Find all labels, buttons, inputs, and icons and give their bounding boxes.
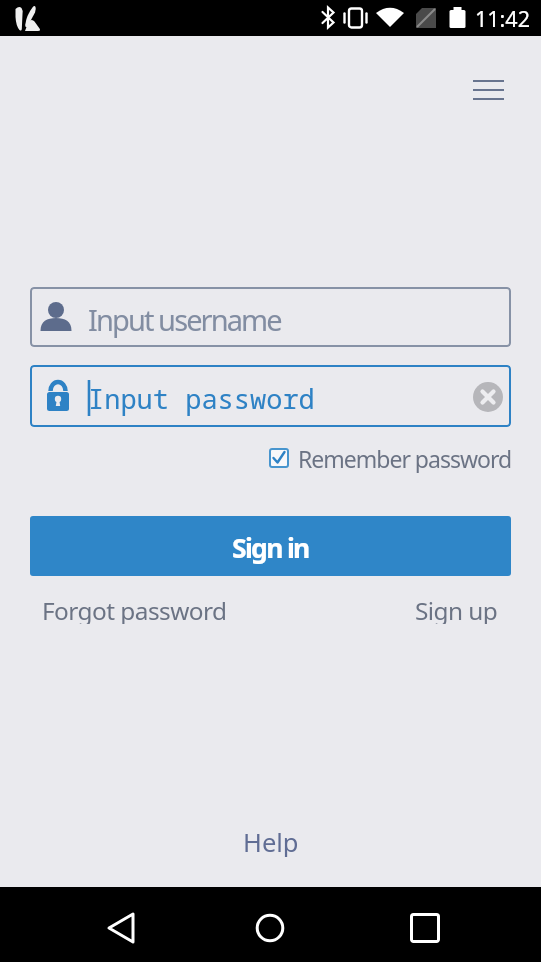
button[interactable] — [473, 382, 503, 412]
button[interactable] — [96, 903, 146, 953]
button[interactable] — [465, 70, 511, 110]
button[interactable]: Forgot password — [42, 594, 227, 624]
staticText: Sign up — [415, 594, 498, 624]
staticText: Forgot password — [42, 594, 227, 624]
button[interactable]: Help — [243, 825, 299, 857]
button[interactable]: Sign up — [415, 594, 498, 624]
button[interactable]: Input password — [30, 365, 511, 427]
button[interactable]: Remember password — [269, 443, 512, 473]
staticText: Remember password — [298, 443, 512, 473]
staticText: Input username — [88, 300, 281, 339]
button[interactable]: Sign in — [30, 516, 511, 576]
staticText: Input password — [88, 380, 315, 417]
button[interactable]: Input username — [30, 287, 511, 347]
staticText: Sign in — [232, 530, 309, 566]
button[interactable] — [245, 903, 295, 953]
staticText: Help — [243, 825, 299, 857]
button[interactable] — [400, 903, 450, 953]
staticText: 11:42 — [475, 4, 530, 33]
